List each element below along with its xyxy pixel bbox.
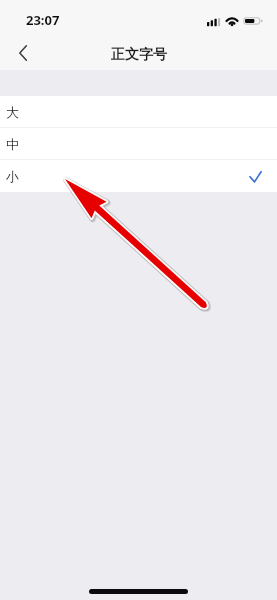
button[interactable]: 中 — [0, 128, 277, 160]
staticText: 中 — [6, 136, 19, 152]
button[interactable]: 小 — [0, 160, 277, 192]
staticText: 正文字号 — [111, 46, 167, 64]
staticText: 23:07 — [26, 11, 60, 29]
button[interactable]: Back — [7, 37, 39, 69]
staticText: 小 — [6, 168, 19, 184]
button[interactable]: 大 — [0, 96, 277, 128]
staticText: 大 — [6, 104, 19, 120]
